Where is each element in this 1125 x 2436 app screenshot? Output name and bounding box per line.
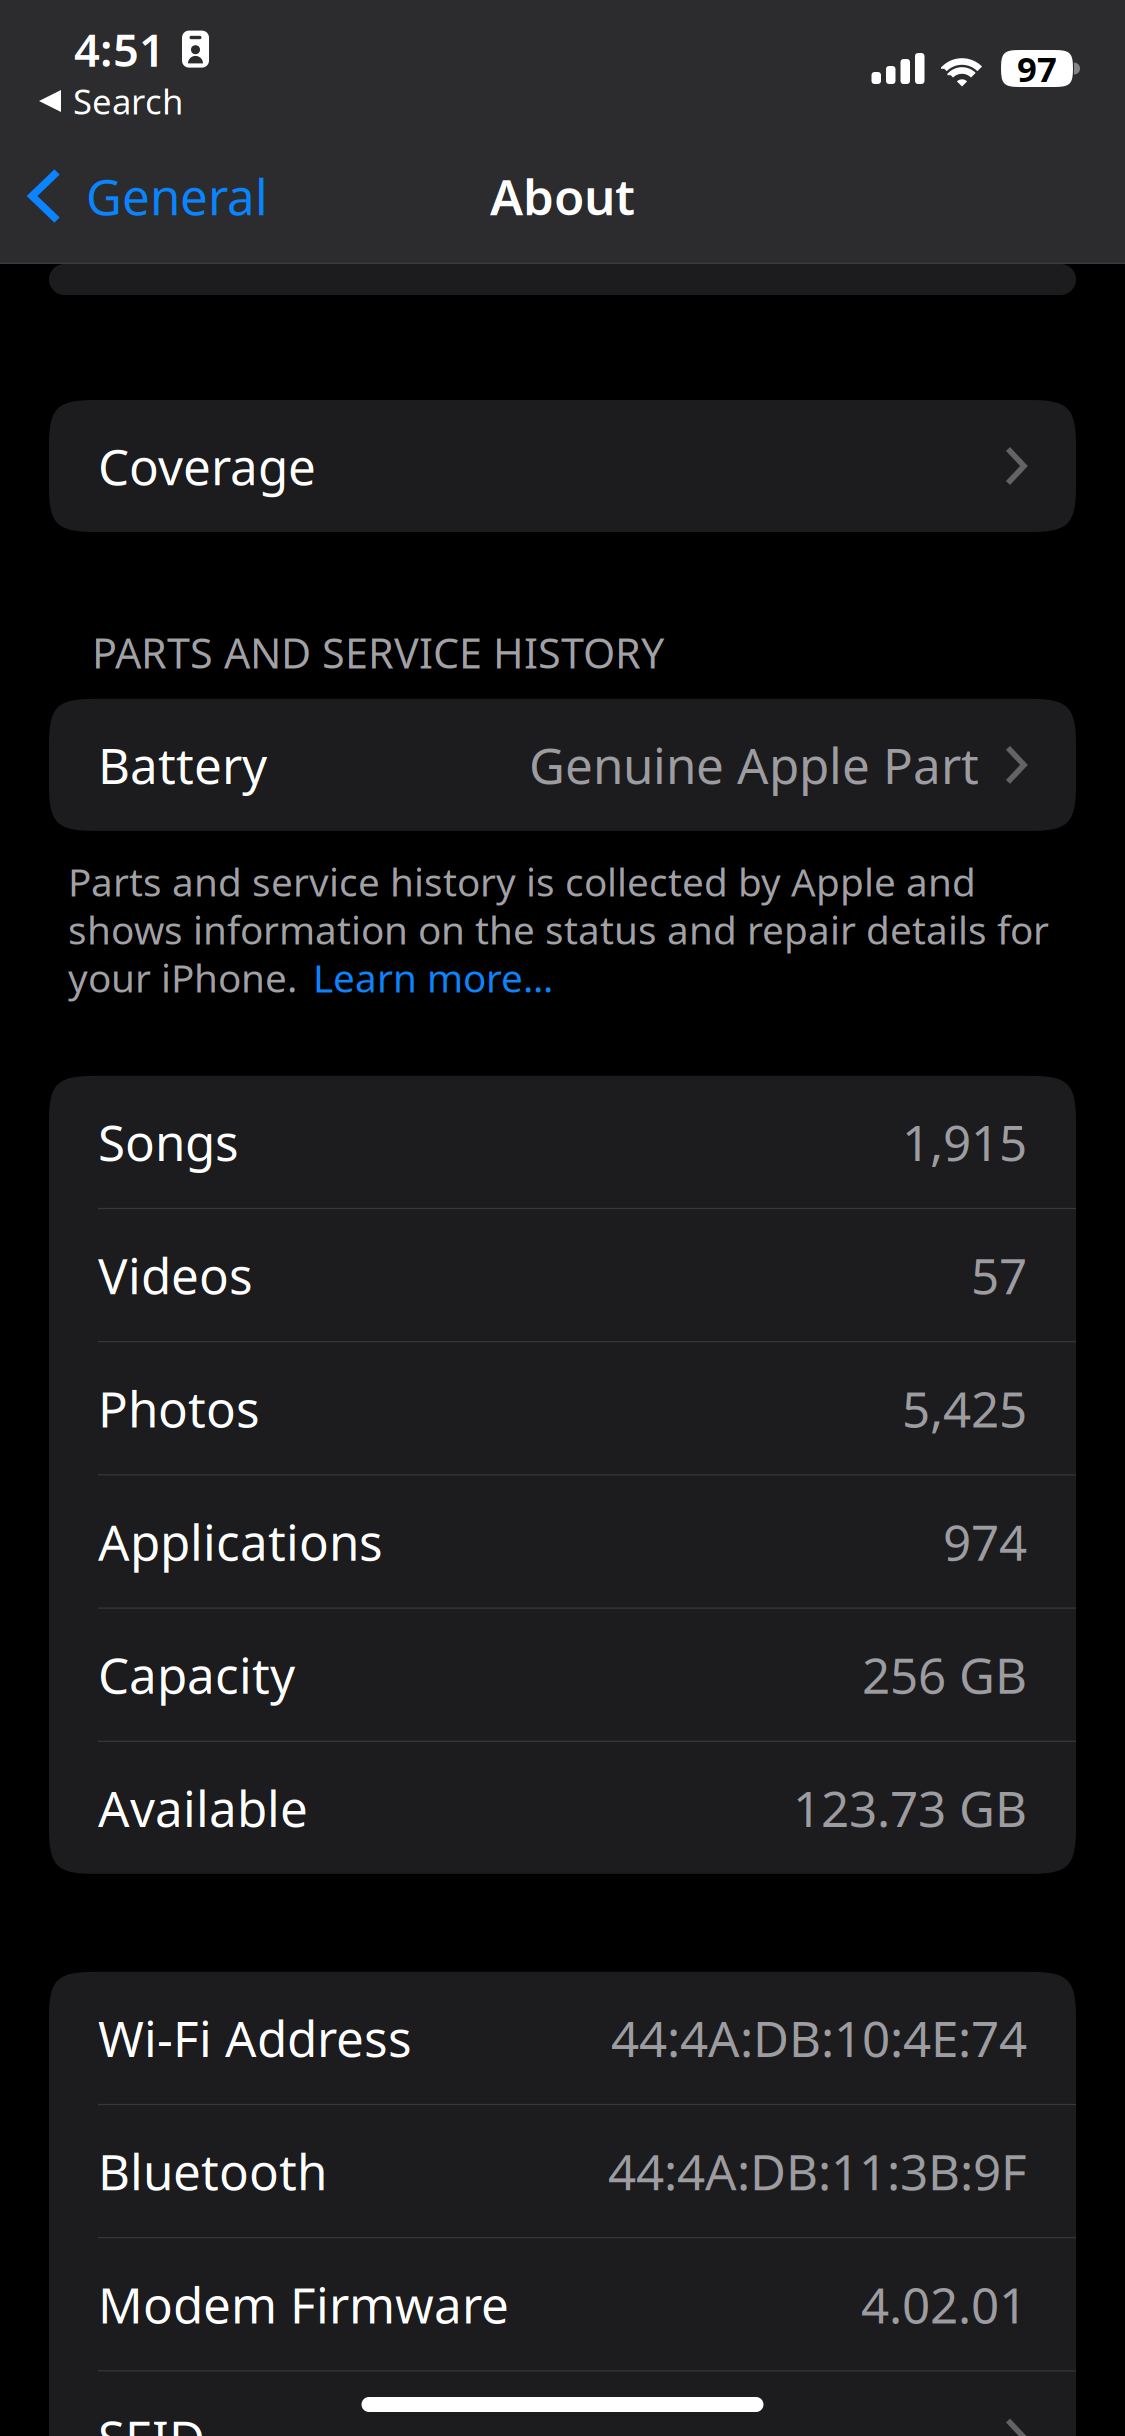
staticText: Available <box>98 1775 308 1841</box>
staticText: Search <box>73 78 183 124</box>
staticText: 123.73 GB <box>793 1775 1027 1841</box>
staticText: Modem Firmware <box>98 2271 509 2337</box>
button[interactable]: Battery <box>49 699 1076 831</box>
staticText: Applications <box>98 1509 383 1574</box>
staticText: 44:4A:DB:11:3B:9F <box>608 2138 1027 2204</box>
staticText: Parts and service history is collected b… <box>68 856 976 907</box>
button[interactable]: General <box>0 148 298 244</box>
staticText: shows information on the status and repa… <box>68 904 1049 955</box>
button[interactable]: Coverage <box>49 400 1076 532</box>
staticText: Songs <box>98 1109 239 1175</box>
staticText: 1,915 <box>902 1109 1027 1175</box>
staticText: Videos <box>98 1242 253 1308</box>
staticText: 44:4A:DB:10:4E:74 <box>611 2005 1027 2071</box>
staticText: Wi-Fi Address <box>98 2005 412 2071</box>
staticText: Bluetooth <box>98 2138 327 2204</box>
staticText: Coverage <box>98 433 316 499</box>
button[interactable]: SEID <box>49 2371 1076 2436</box>
staticText: Battery <box>98 732 267 798</box>
staticText: 256 GB <box>862 1642 1027 1707</box>
staticText: Capacity <box>98 1642 295 1707</box>
staticText: About <box>490 163 635 229</box>
staticText: 4.02.01 <box>861 2271 1027 2337</box>
staticText: 57 <box>971 1242 1027 1308</box>
staticText: 974 <box>943 1509 1027 1574</box>
staticText: Genuine Apple Part <box>529 732 979 798</box>
staticText: 4:51 <box>74 19 165 79</box>
staticText: General <box>86 163 268 229</box>
staticText: Learn more... <box>313 952 553 1003</box>
staticText: Photos <box>98 1375 260 1441</box>
staticText: SEID <box>98 2405 205 2436</box>
staticText: PARTS AND SERVICE HISTORY <box>92 625 664 680</box>
staticText: 97 <box>1017 45 1057 91</box>
button[interactable]: Learn more... <box>297 952 553 1003</box>
staticText: your iPhone. <box>68 952 297 1003</box>
staticText: 5,425 <box>902 1375 1027 1441</box>
button[interactable]: Search <box>39 84 183 118</box>
